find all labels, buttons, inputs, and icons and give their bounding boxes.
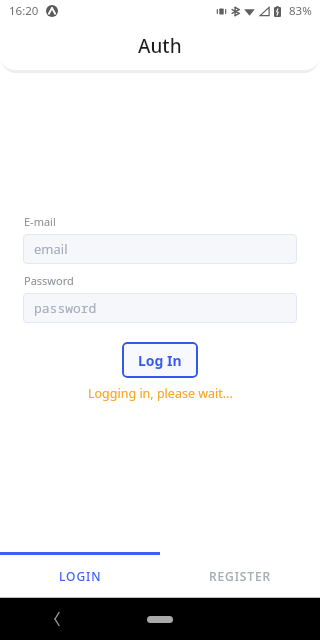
staticText: 83%: [289, 3, 312, 19]
staticText: E-mail: [24, 214, 56, 229]
staticText: Password: [24, 273, 74, 288]
staticText: email: [34, 240, 68, 258]
staticText: password: [34, 299, 97, 317]
button[interactable]: Back: [44, 606, 70, 632]
staticText: REGISTER: [209, 568, 272, 584]
staticText: LOGIN: [59, 568, 102, 584]
button[interactable]: Home: [147, 616, 173, 623]
button[interactable]: password: [23, 293, 297, 323]
staticText: Auth: [138, 33, 182, 59]
button[interactable]: LOGIN: [0, 555, 160, 597]
button[interactable]: REGISTER: [160, 555, 320, 597]
staticText: Log In: [138, 351, 182, 370]
staticText: Logging in, please wait...: [88, 385, 233, 402]
button[interactable]: email: [23, 234, 297, 264]
button[interactable]: Log In: [122, 342, 198, 378]
staticText: 16:20: [9, 3, 39, 19]
